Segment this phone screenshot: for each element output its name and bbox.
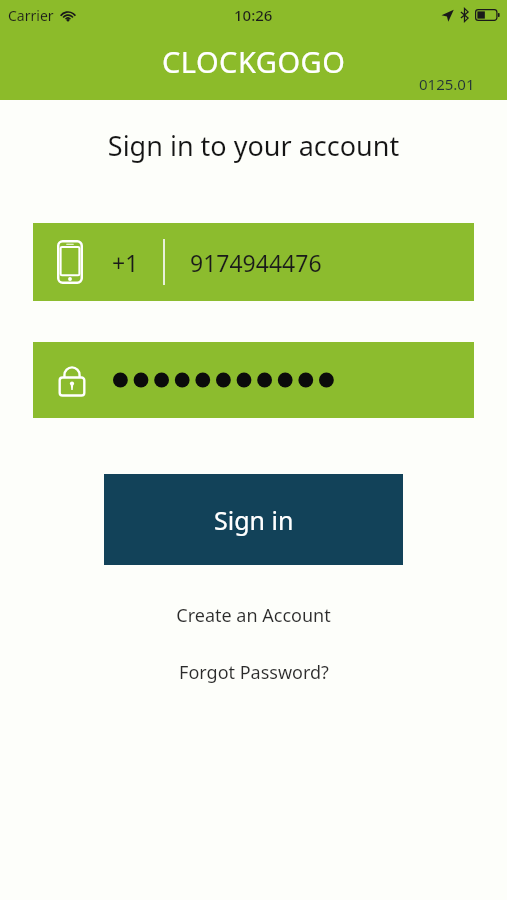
- other: Phone: [57, 240, 83, 284]
- staticText: 9174944476: [190, 247, 322, 278]
- staticText: +1: [112, 247, 139, 278]
- staticText: 0125.01: [419, 74, 475, 94]
- staticText: 10:26: [234, 5, 273, 25]
- button[interactable]: Phone: [33, 223, 474, 301]
- other: Password: [58, 362, 86, 398]
- staticText: Forgot Password?: [179, 660, 329, 685]
- staticText: Create an Account: [176, 603, 331, 628]
- button[interactable]: Sign in: [104, 474, 403, 565]
- staticText: Sign in: [214, 503, 294, 537]
- button[interactable]: Password: [33, 342, 474, 418]
- button[interactable]: Forgot Password?: [0, 654, 507, 691]
- staticText: Carrier: [8, 6, 54, 25]
- staticText: CLOCKGOGO: [162, 42, 346, 81]
- button[interactable]: Create an Account: [0, 597, 507, 634]
- staticText: Sign in to your account: [0, 127, 507, 164]
